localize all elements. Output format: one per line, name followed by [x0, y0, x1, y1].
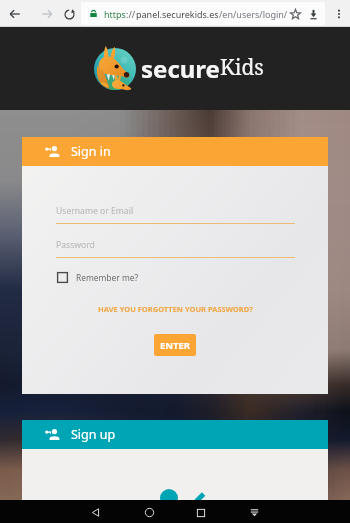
button[interactable]: Bookmark: [288, 7, 302, 21]
button[interactable]: Recent apps: [189, 501, 213, 523]
staticText: Sign in: [71, 143, 111, 160]
staticText: /en/users/login/: [219, 8, 288, 20]
staticText: https: [104, 8, 126, 20]
button[interactable]: Sign up: [22, 420, 328, 449]
staticText: panel.securekids.es: [136, 8, 219, 20]
staticText: Sign up: [71, 426, 116, 443]
staticText: Username or Email: [56, 205, 134, 217]
button[interactable]: Reload: [58, 3, 80, 25]
button[interactable]: Downloads: [307, 7, 319, 21]
button[interactable]: Sign in: [22, 137, 328, 166]
button[interactable]: Home: [137, 501, 161, 523]
button[interactable]: More options: [329, 4, 348, 23]
button[interactable]: Hide navigation: [242, 501, 266, 523]
button[interactable]: HAVE YOU FORGOTTEN YOUR PASSWORD?: [98, 304, 253, 314]
button[interactable]: Remember me?: [57, 272, 139, 283]
button[interactable]: Add: [160, 489, 178, 507]
button[interactable]: https: [81, 2, 325, 25]
staticText: Kids: [220, 53, 264, 82]
button[interactable]: Edit: [190, 490, 206, 506]
staticText: secure: [141, 52, 220, 82]
staticText: Password: [56, 239, 95, 251]
staticText: ENTER: [160, 339, 191, 352]
staticText: ://: [126, 8, 136, 20]
button[interactable]: Back: [4, 3, 26, 25]
button[interactable]: ENTER: [154, 334, 196, 356]
staticText: Remember me?: [76, 272, 139, 283]
button[interactable]: Back: [83, 501, 107, 523]
button[interactable]: Forward: [36, 3, 58, 25]
